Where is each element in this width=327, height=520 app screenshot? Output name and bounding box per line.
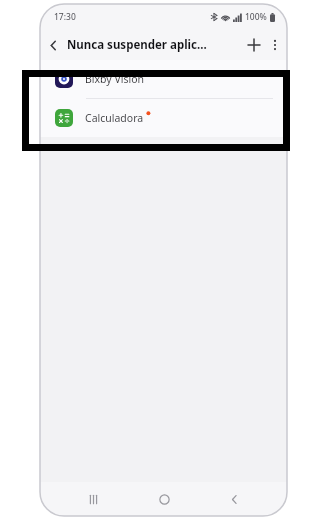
button[interactable]: Back	[217, 482, 251, 516]
button[interactable]: Calculadora	[40, 99, 287, 137]
button[interactable]: Bixby Vision	[40, 60, 287, 98]
staticText: Bixby Vision	[85, 72, 145, 86]
staticText: 17:30	[54, 11, 76, 23]
staticText: Calculadora	[85, 111, 144, 125]
button[interactable]: Add	[243, 34, 265, 56]
button[interactable]: Home	[147, 482, 181, 516]
staticText: 100%	[245, 11, 267, 23]
button[interactable]: More options	[265, 34, 284, 56]
button[interactable]: Recents	[76, 482, 110, 516]
staticText: Nunca suspender aplic...	[67, 37, 243, 53]
button[interactable]: Back	[42, 33, 64, 57]
